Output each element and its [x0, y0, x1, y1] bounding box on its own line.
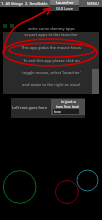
staticText: box — [54, 109, 61, 114]
button[interactable]: 1. All things — [0, 0, 24, 7]
staticText: Left text goes here — [12, 105, 48, 110]
staticText: To exit this app please click on — [23, 58, 80, 63]
staticText: Launcher — [56, 0, 74, 5]
staticText: 1. All things — [1, 1, 23, 6]
staticText: or port apps to this launcher — [24, 32, 78, 37]
button[interactable]: MENU — [86, 0, 100, 7]
button[interactable]: GUI Love — [50, 5, 79, 11]
staticText: in just a — [61, 99, 76, 104]
button[interactable]: box — [53, 109, 79, 114]
staticText: toggle mouse, select 'launcher' — [22, 70, 81, 75]
staticText: GUI Love — [56, 6, 73, 11]
staticText: 3. Sticky — [50, 1, 66, 6]
button[interactable]: 3. Sticky — [49, 0, 67, 7]
staticText: MENU — [87, 1, 99, 6]
staticText: two line text — [56, 104, 80, 109]
staticText: and swipe to the right as usual — [22, 82, 80, 87]
staticText: write some dummy apps — [28, 26, 75, 31]
button[interactable]: Launcher — [50, 0, 79, 5]
staticText: This app grabs the mouse focus — [21, 45, 81, 50]
staticText: 2. Scrollable — [25, 1, 48, 6]
button[interactable]: 2. Scrollable — [24, 0, 49, 7]
